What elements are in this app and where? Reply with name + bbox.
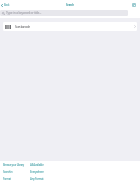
button[interactable]: Back [0, 2, 12, 8]
button[interactable]: Format [0, 175, 140, 182]
button[interactable]: Browse your Library [0, 161, 140, 168]
button[interactable]: Scan a book [132, 3, 136, 7]
staticText: Search [66, 3, 74, 7]
button[interactable]: Type in a keyword or title... [0, 10, 128, 16]
staticText: Format [3, 177, 11, 181]
staticText: Browse your Library [3, 163, 25, 167]
button[interactable]: Search in [0, 168, 140, 175]
staticText: Any Format [30, 177, 44, 181]
staticText: Everywhere [30, 170, 44, 174]
button[interactable]: Scan barcode [3, 22, 137, 31]
staticText: Scan barcode [15, 25, 30, 29]
staticText: Type in a keyword or title... [6, 11, 42, 15]
staticText: Back [4, 3, 10, 7]
staticText: All Available [30, 163, 44, 167]
staticText: Search in [3, 170, 13, 174]
